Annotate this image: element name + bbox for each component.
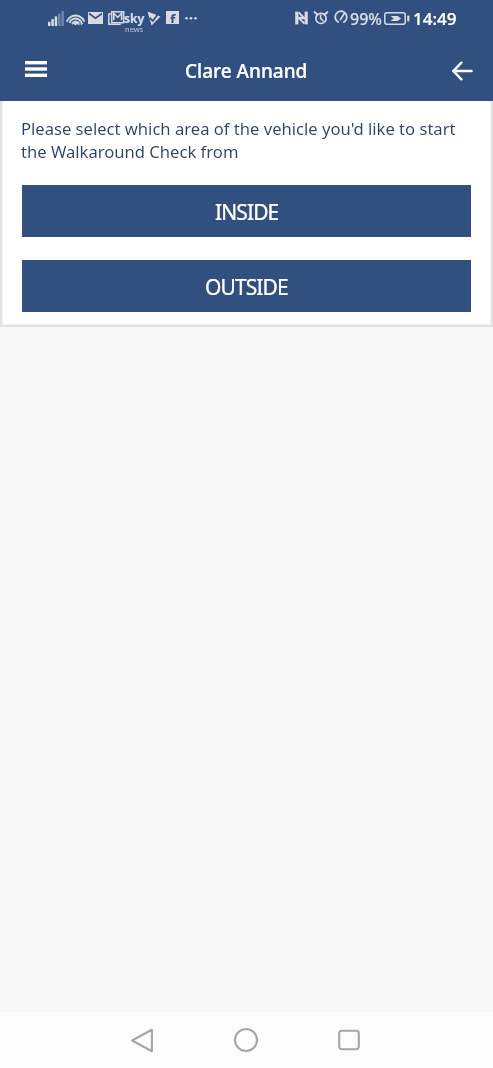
button[interactable]: Open navigation menu [12,47,60,95]
button[interactable]: OUTSIDE [22,260,471,312]
staticText: INSIDE [215,198,279,227]
button[interactable]: Back [112,1012,172,1068]
staticText: Please select which area of the vehicle … [21,117,471,163]
button[interactable]: Recent apps [319,1012,379,1068]
button[interactable]: Home [216,1012,276,1068]
staticText: f [170,10,176,23]
button[interactable]: INSIDE [22,185,471,237]
staticText: sky [124,10,145,26]
staticText: news [125,24,144,34]
staticText: OUTSIDE [205,273,288,302]
staticText: 14:49 [413,7,457,30]
staticText: 99% [350,8,382,30]
staticText: Clare Annand [185,58,308,84]
button[interactable]: Back [438,47,486,95]
